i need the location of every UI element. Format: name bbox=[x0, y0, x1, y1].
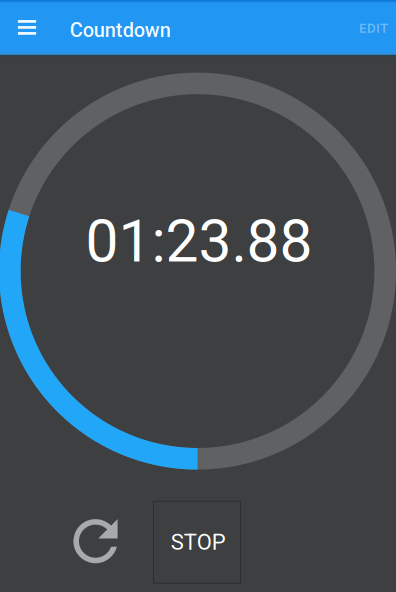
staticText: Countdown bbox=[70, 18, 171, 42]
button[interactable]: EDIT bbox=[345, 4, 396, 52]
button[interactable]: STOP bbox=[154, 501, 241, 583]
button[interactable]: Menu bbox=[5, 5, 49, 49]
staticText: 01:23.88 bbox=[85, 207, 312, 276]
button[interactable]: Reset bbox=[72, 518, 118, 564]
staticText: STOP bbox=[171, 529, 226, 555]
staticText: EDIT bbox=[359, 20, 388, 36]
